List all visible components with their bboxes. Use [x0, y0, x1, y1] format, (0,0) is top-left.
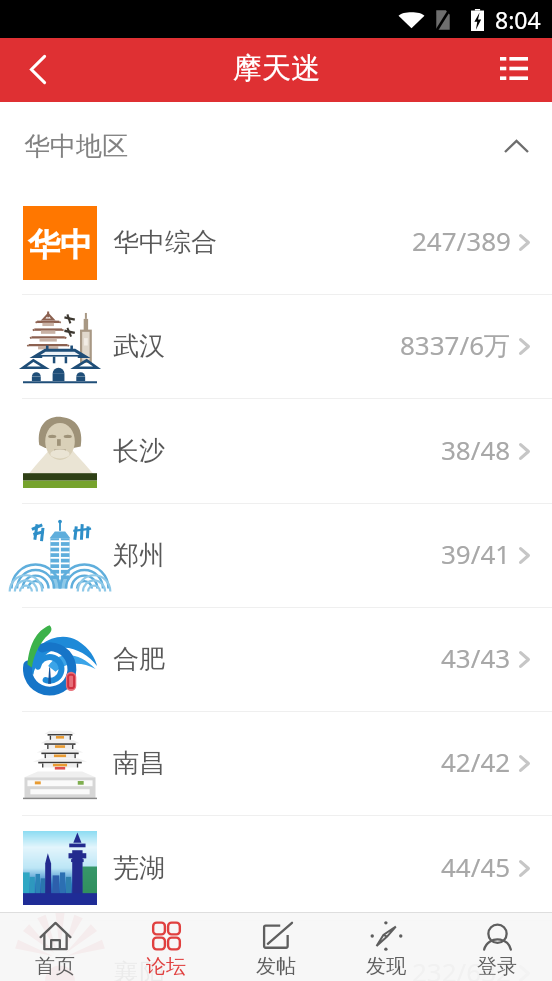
- staticText: 发帖: [256, 954, 296, 979]
- button[interactable]: 武汉: [0, 295, 552, 398]
- staticText: 合肥: [113, 643, 441, 676]
- staticText: 发现: [366, 954, 406, 979]
- staticText: 襄阳: [113, 957, 412, 981]
- button[interactable]: 发帖: [221, 913, 331, 981]
- button[interactable]: 登录: [442, 913, 552, 981]
- staticText: 首页: [35, 954, 75, 979]
- button[interactable]: 发现: [331, 913, 441, 981]
- staticText: 武汉: [113, 330, 400, 363]
- staticText: 44/45: [441, 849, 511, 884]
- staticText: 长沙: [113, 435, 441, 468]
- staticText: 芜湖: [113, 852, 441, 885]
- button[interactable]: Back: [0, 38, 76, 102]
- staticText: 8:04: [495, 4, 541, 35]
- staticText: 南昌: [113, 747, 441, 780]
- button[interactable]: 芜湖: [0, 816, 552, 920]
- staticText: 郑州: [113, 539, 441, 572]
- staticText: 42/42: [441, 744, 511, 779]
- staticText: 232/632: [412, 954, 511, 981]
- staticText: 华中: [28, 225, 92, 265]
- button[interactable]: 首页: [0, 913, 110, 981]
- staticText: 43/43: [441, 640, 511, 675]
- staticText: 华中综合: [113, 226, 412, 259]
- staticText: 38/48: [441, 432, 511, 467]
- button[interactable]: 南昌: [0, 712, 552, 815]
- button[interactable]: 华中地区: [0, 102, 552, 191]
- staticText: 39/41: [441, 536, 511, 571]
- staticText: 登录: [477, 954, 517, 979]
- staticText: 247/389: [412, 223, 511, 258]
- staticText: 华中地区: [24, 130, 128, 163]
- button[interactable]: 合肥: [0, 608, 552, 711]
- button[interactable]: List menu: [476, 38, 552, 102]
- button[interactable]: 长沙: [0, 399, 552, 503]
- button[interactable]: 襄阳: [0, 921, 552, 981]
- button[interactable]: 华中: [0, 191, 552, 294]
- button[interactable]: 郑州: [0, 504, 552, 607]
- staticText: 8337/6万: [400, 327, 511, 363]
- staticText: 摩天迷: [233, 50, 320, 87]
- button[interactable]: 论坛: [111, 913, 221, 981]
- staticText: 论坛: [146, 954, 186, 979]
